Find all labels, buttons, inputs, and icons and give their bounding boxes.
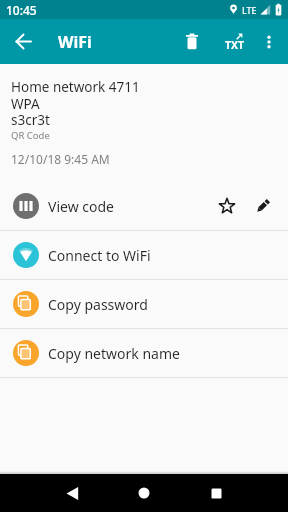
staticText: LTE (242, 4, 257, 16)
button[interactable] (250, 19, 288, 64)
button[interactable] (168, 19, 216, 64)
staticText: TXT (225, 38, 245, 52)
button[interactable]: Connect to WiFi (0, 231, 288, 279)
staticText: WiFi (58, 31, 92, 53)
button[interactable]: Copy network name (0, 329, 288, 377)
button[interactable] (108, 474, 180, 512)
button[interactable] (0, 19, 46, 64)
button[interactable] (247, 191, 277, 221)
button[interactable] (180, 474, 252, 512)
button[interactable]: TXT (216, 19, 250, 64)
button[interactable] (212, 191, 242, 221)
staticText: Copy password (48, 295, 148, 314)
staticText: 12/10/18 9:45 AM (11, 151, 110, 167)
button[interactable]: View code (0, 182, 288, 230)
button[interactable] (36, 474, 108, 512)
staticText: QR Code (11, 129, 50, 142)
staticText: Copy network name (48, 344, 180, 363)
staticText: Home network 4711 WPA s3cr3t (11, 78, 140, 129)
staticText: 10:45 (6, 2, 37, 18)
staticText: Connect to WiFi (48, 246, 151, 265)
button[interactable]: Copy password (0, 280, 288, 328)
staticText: View code (48, 197, 114, 216)
